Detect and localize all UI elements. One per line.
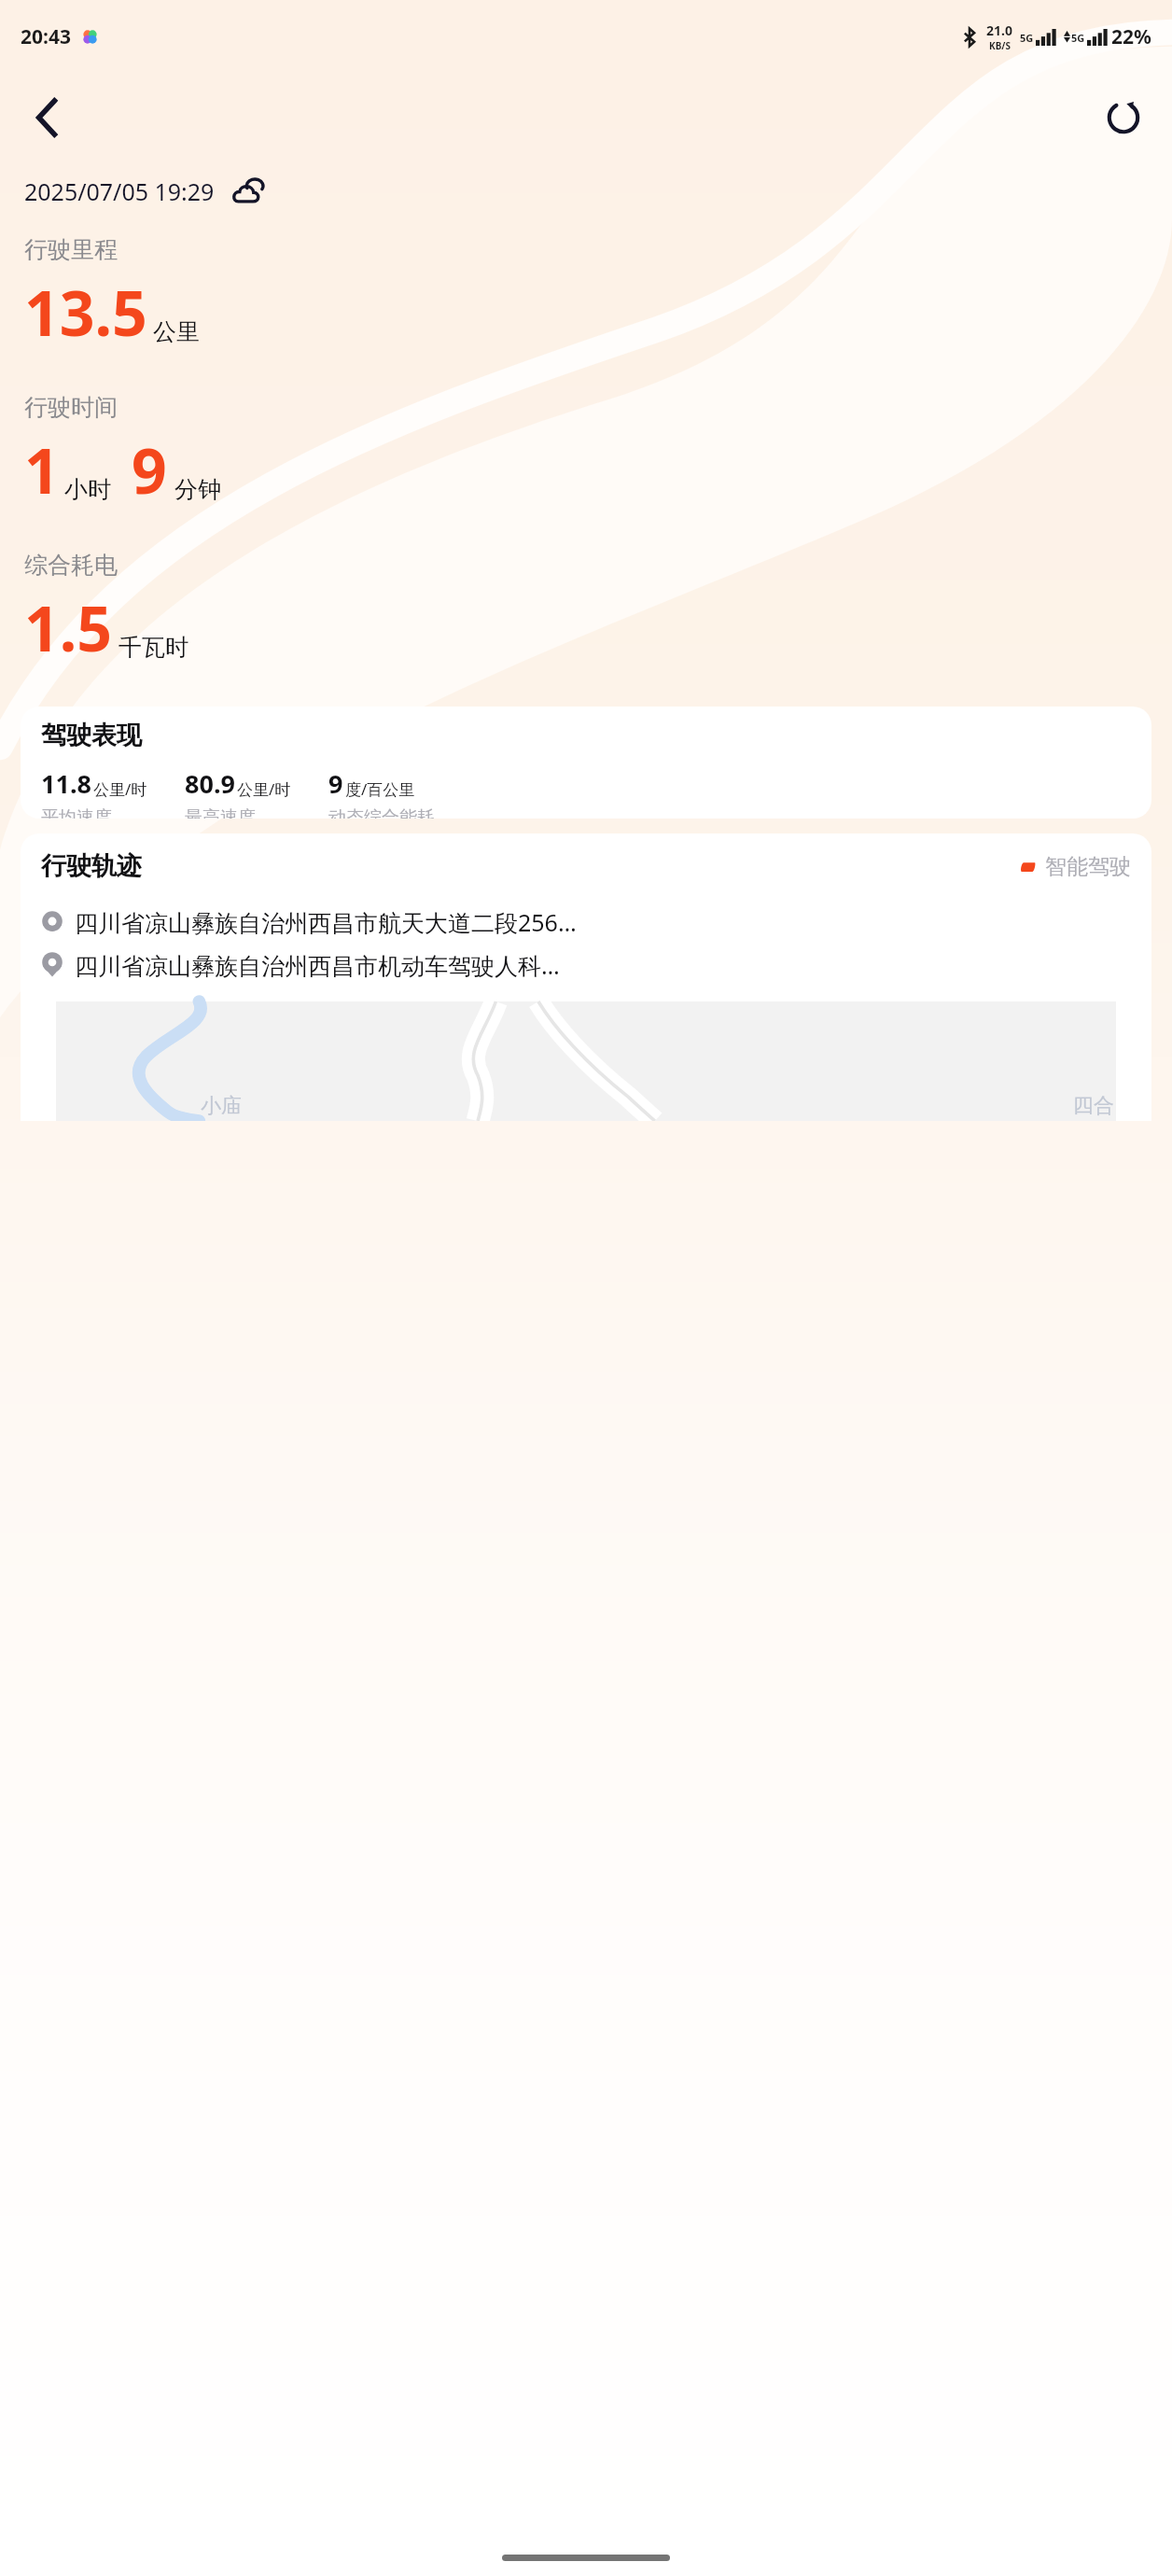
staticText: 公里 xyxy=(153,317,200,346)
button[interactable]: 驾驶表现 xyxy=(21,707,1151,819)
staticText: 智能驾驶 xyxy=(1045,853,1131,880)
staticText: 20:43 xyxy=(21,23,71,50)
button[interactable]: Route map xyxy=(56,1001,1116,1121)
staticText: 13.5 xyxy=(24,270,147,354)
staticText: 小庙 xyxy=(201,1093,242,1119)
staticText: 综合耗电 xyxy=(24,551,118,580)
staticText: KB/S xyxy=(989,39,1011,52)
button[interactable]: 行驶轨迹 xyxy=(21,833,1151,1121)
button[interactable]: 四川省凉山彝族自治州西昌市航天大道二段256… xyxy=(41,906,1138,938)
staticText: 1.5 xyxy=(24,585,113,669)
staticText: 行驶轨迹 xyxy=(41,850,142,882)
staticText: 分钟 xyxy=(174,475,221,504)
staticText: 1 xyxy=(24,427,60,511)
staticText: 驾驶表现 xyxy=(41,720,142,751)
button[interactable]: 四川省凉山彝族自治州西昌市机动车驾驶人科… xyxy=(41,949,1138,981)
staticText: 11.8 xyxy=(41,766,91,801)
staticText: 四合 xyxy=(1073,1093,1114,1119)
staticText: 最高速度 xyxy=(185,806,256,819)
staticText: 21.0 xyxy=(986,21,1012,39)
staticText: 动态综合能耗 xyxy=(328,806,435,819)
staticText: 公里/时 xyxy=(93,778,147,800)
staticText: 公里/时 xyxy=(237,778,291,800)
staticText: 平均速度 xyxy=(41,806,112,819)
staticText: 2025/07/05 19:29 xyxy=(24,175,215,207)
staticText: 四川省凉山彝族自治州西昌市航天大道二段256… xyxy=(75,906,577,938)
staticText: 22% xyxy=(1111,23,1151,50)
staticText: 小时 xyxy=(64,475,111,504)
staticText: 5G xyxy=(1020,31,1034,45)
staticText: 度/百公里 xyxy=(345,778,415,800)
staticText: 9 xyxy=(328,766,343,801)
button[interactable]: Refresh xyxy=(1092,86,1155,149)
staticText: 80.9 xyxy=(185,766,235,801)
staticText: 四川省凉山彝族自治州西昌市机动车驾驶人科… xyxy=(75,949,560,981)
staticText: 9 xyxy=(132,427,167,511)
staticText: 5G xyxy=(1071,31,1085,45)
staticText: 千瓦时 xyxy=(119,633,188,662)
staticText: 行驶时间 xyxy=(24,393,118,422)
button[interactable]: Back xyxy=(17,88,77,147)
staticText: 行驶里程 xyxy=(24,235,118,264)
